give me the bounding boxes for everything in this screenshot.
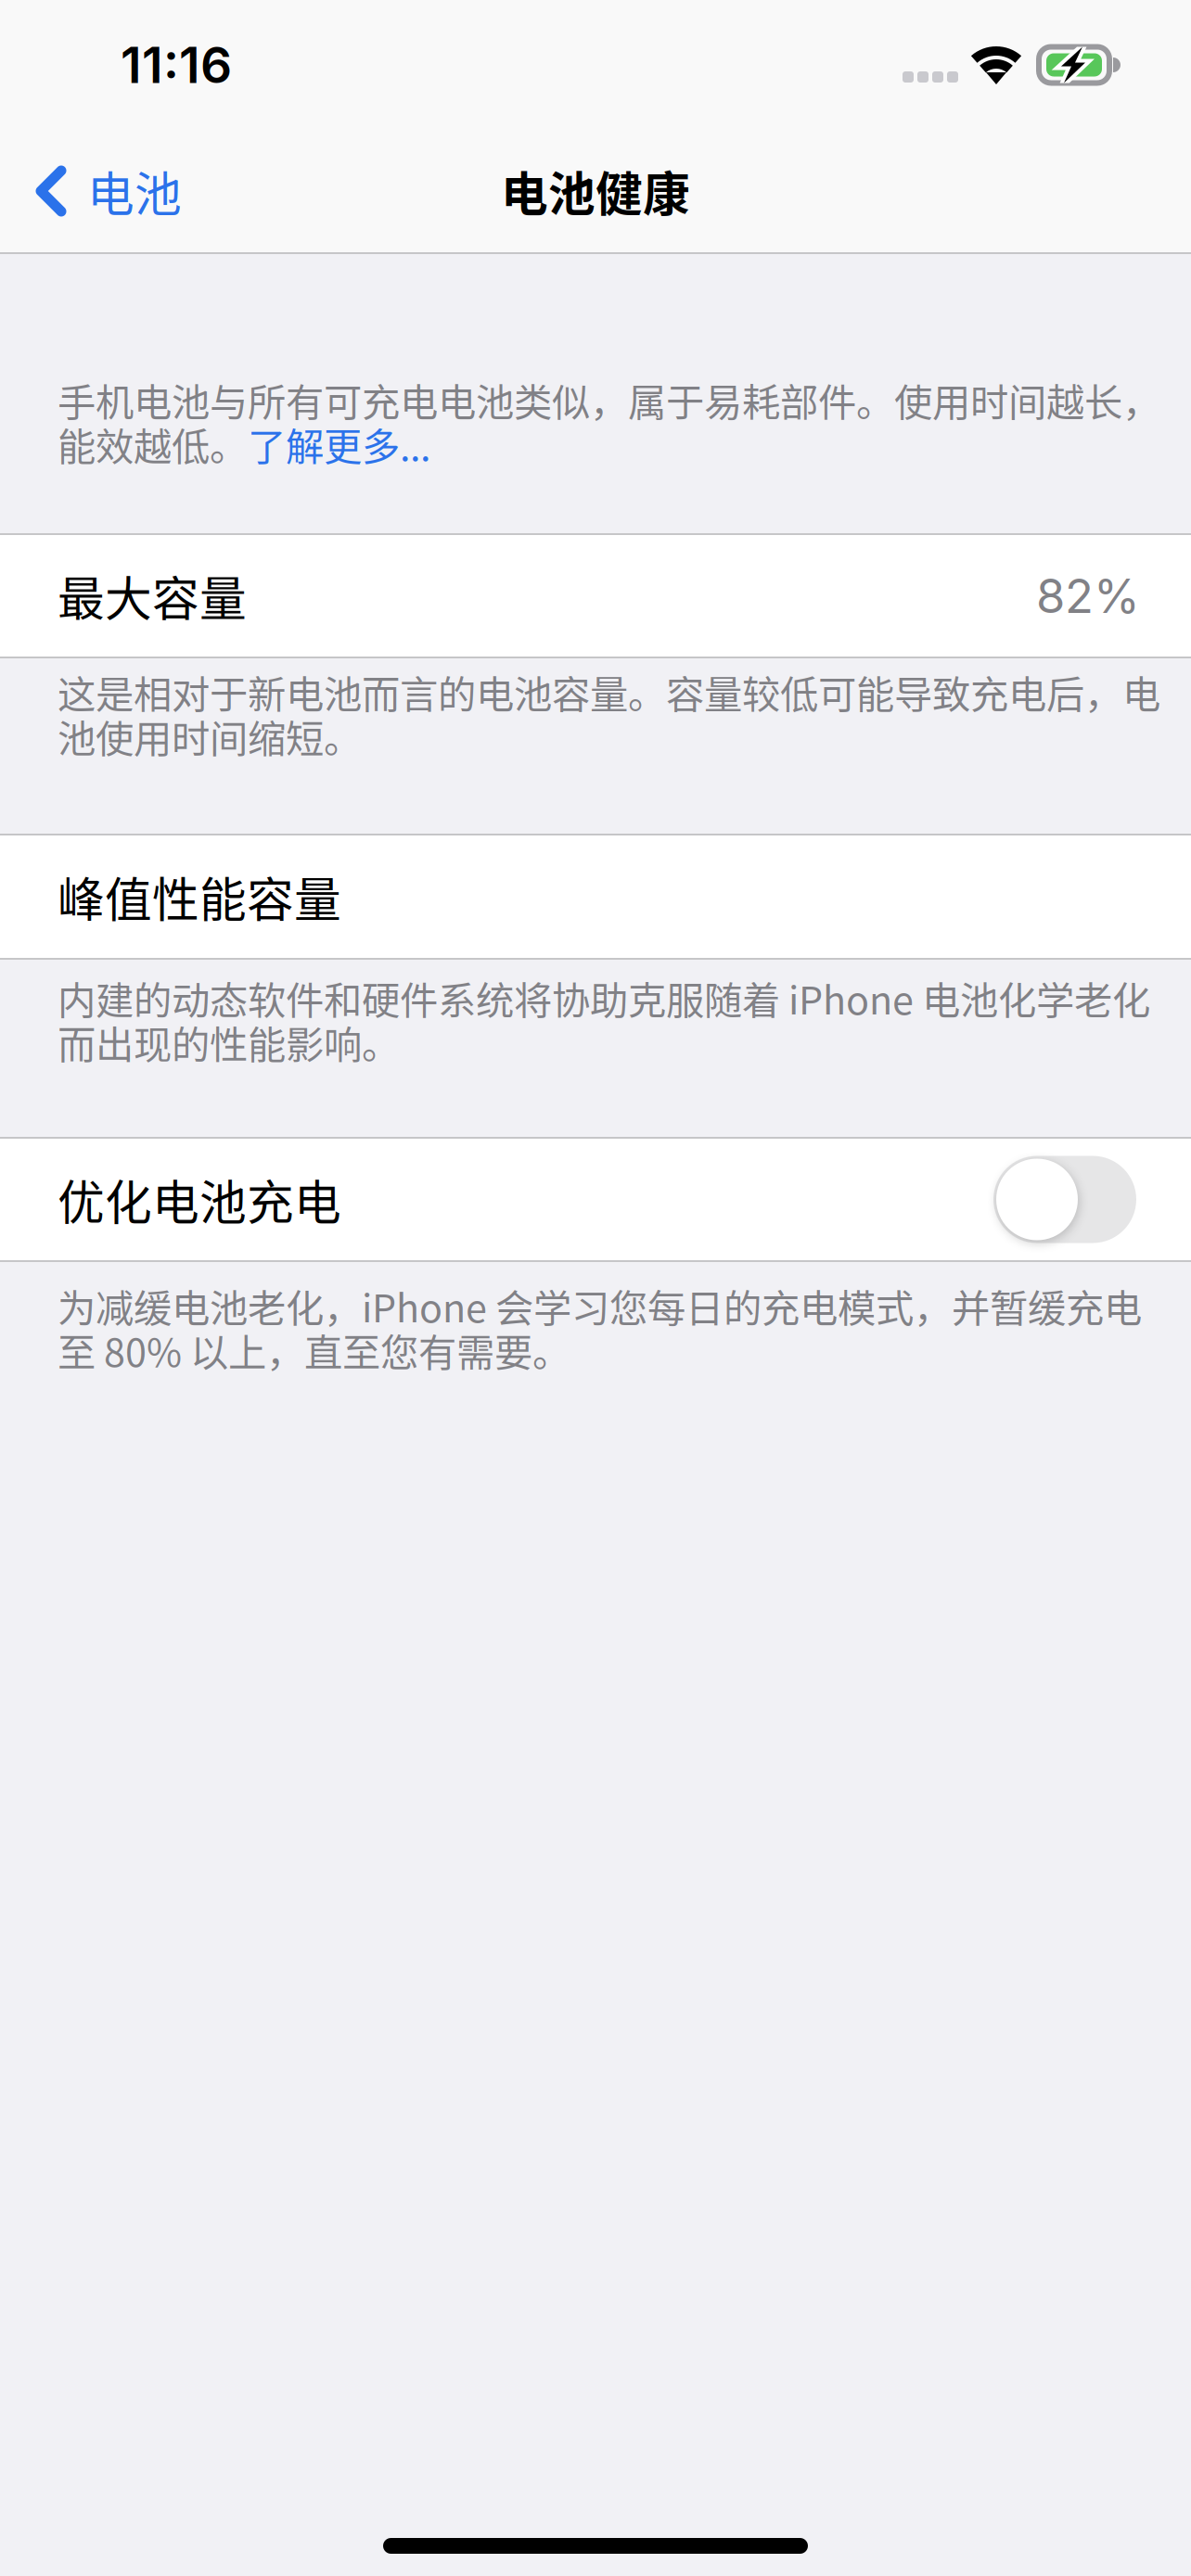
staticText: 能效越低。 (58, 416, 248, 472)
staticText: 峰值性能容量 (58, 863, 341, 931)
button[interactable]: 了解更多... (248, 416, 430, 472)
staticText: 而出现的性能影响。 (58, 1014, 400, 1070)
staticText: 为减缓电池老化，iPhone 会学习您每日的充电模式，并暂缓充电 (58, 1278, 1142, 1333)
staticText: 内建的动态软件和硬件系统将协助克服随着 iPhone 电池化学老化 (58, 970, 1150, 1025)
button[interactable]: 优化电池充电 (0, 1139, 1191, 1260)
staticText: 11:16 (121, 35, 232, 95)
button[interactable]: 峰值性能容量 (0, 835, 1191, 958)
staticText: 电池健康 (501, 157, 690, 225)
staticText: 82% (1036, 567, 1140, 624)
staticText: 最大容量 (58, 562, 247, 630)
staticText: 了解更多... (248, 416, 430, 472)
staticText: 电池 (87, 157, 182, 225)
staticText: 这是相对于新电池而言的电池容量。容量较低可能导致充电后，电 (58, 664, 1160, 719)
staticText: 优化电池充电 (58, 1165, 341, 1233)
button[interactable]: 最大容量 (0, 535, 1191, 657)
staticText: 手机电池与所有可充电电池类似，属于易耗部件。使用时间越长， (58, 372, 1160, 427)
staticText: 至 80% 以上，直至您有需要。 (58, 1322, 570, 1378)
button[interactable]: 电池 (0, 133, 204, 249)
staticText: 池使用时间缩短。 (58, 708, 362, 764)
